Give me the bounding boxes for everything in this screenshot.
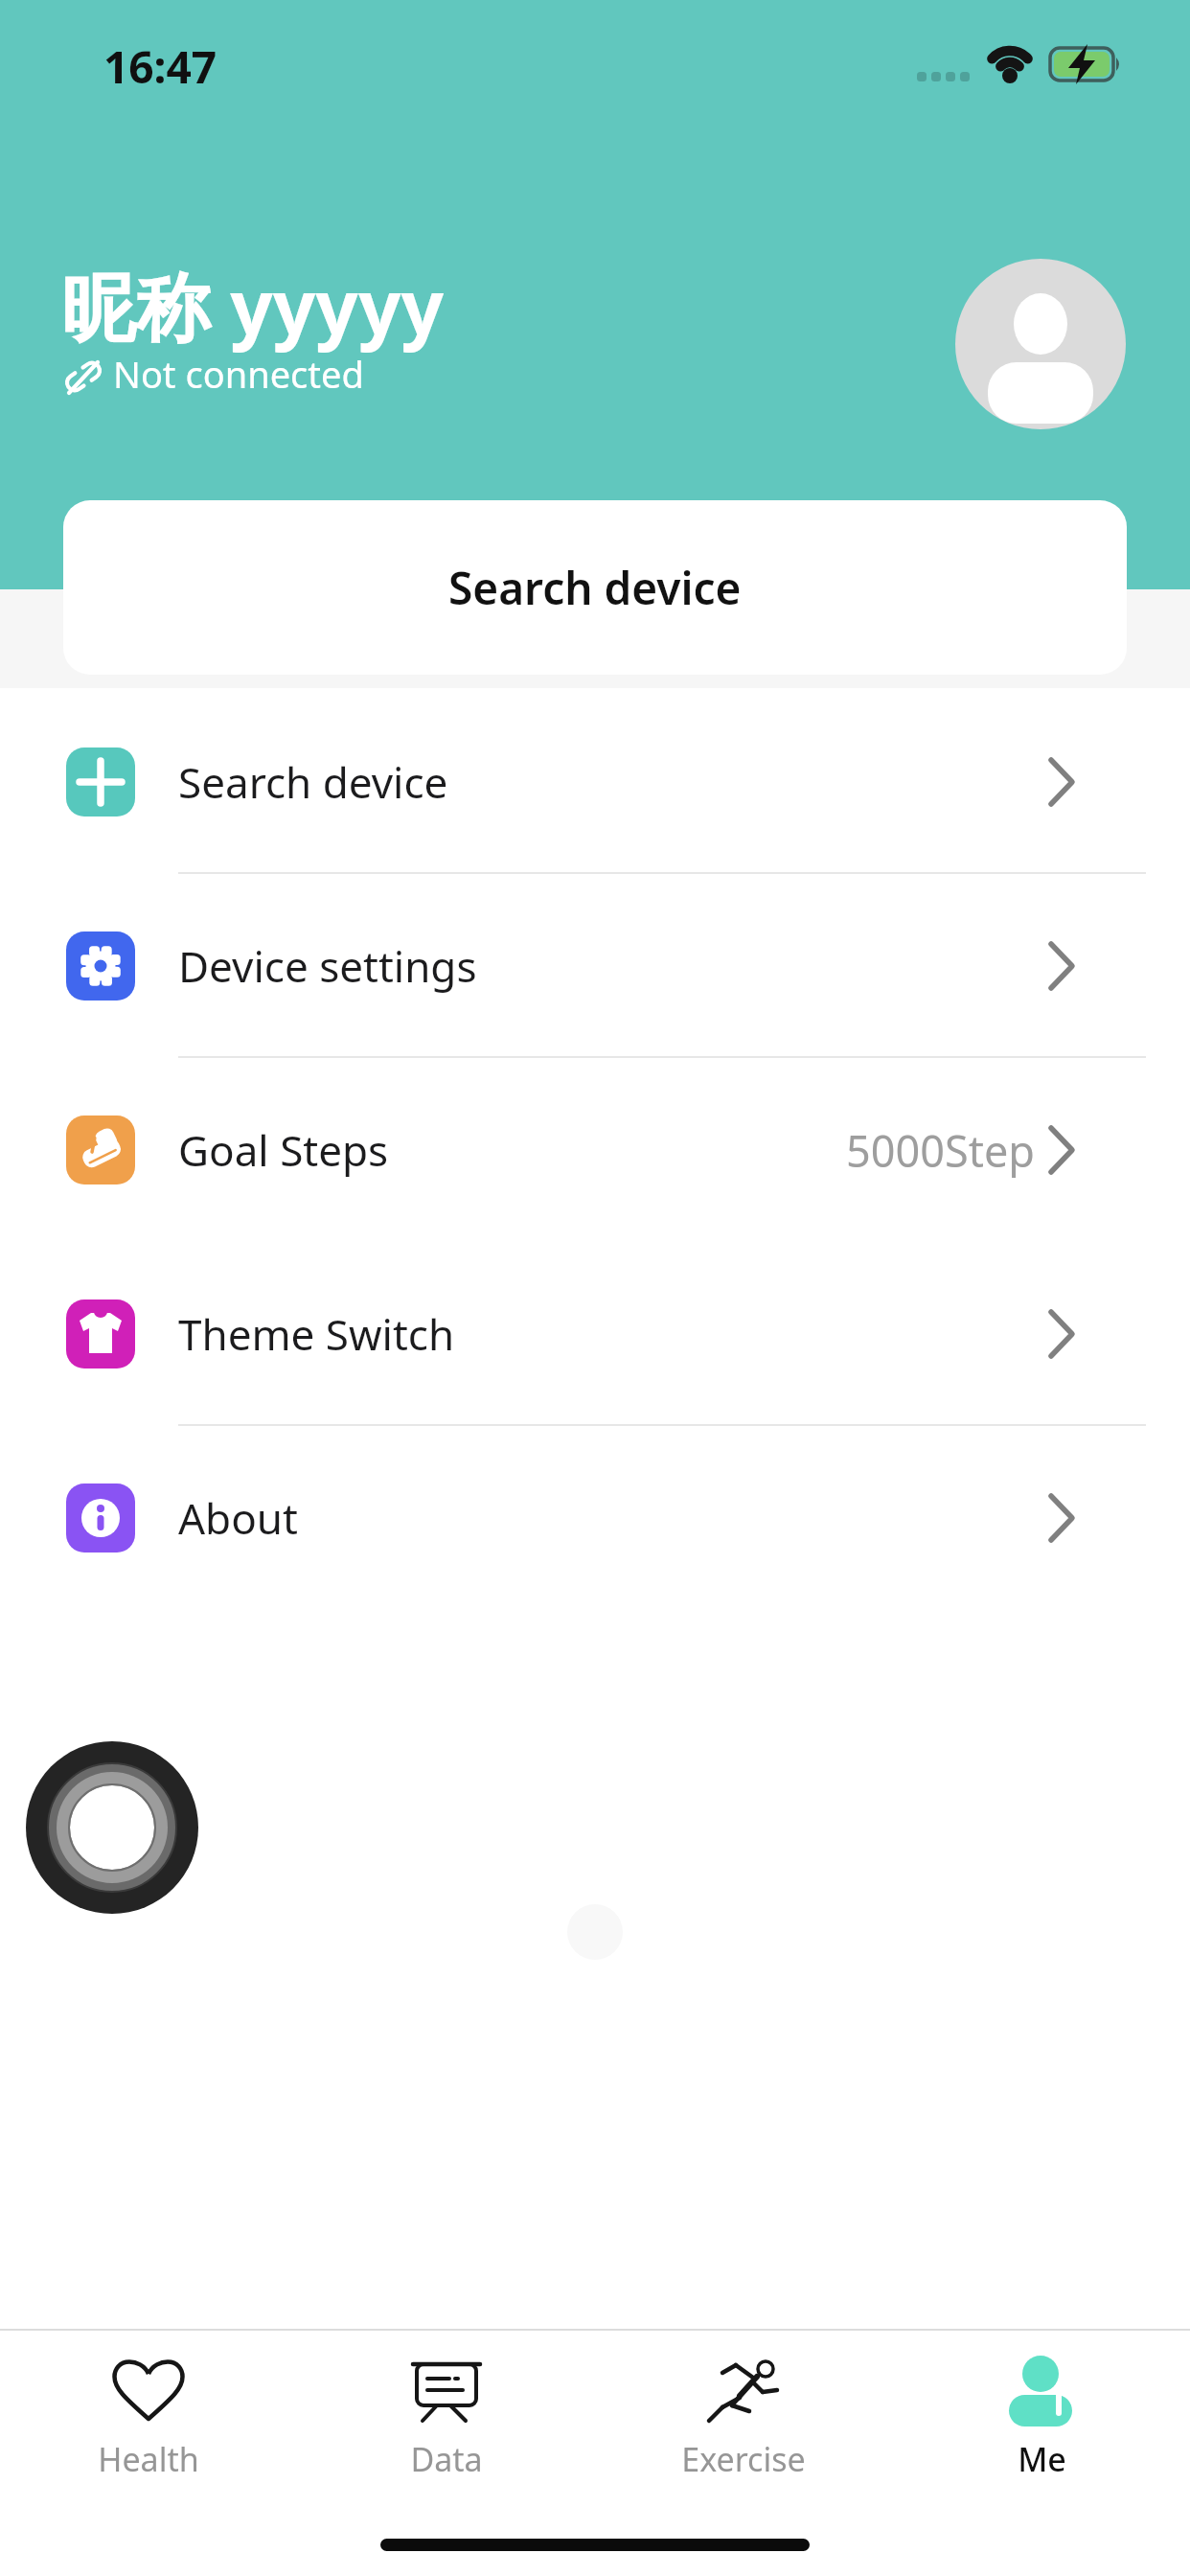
button[interactable] <box>26 1741 198 1914</box>
button[interactable]: Device settings <box>0 874 1190 1058</box>
staticText: Data <box>410 2437 483 2481</box>
button[interactable] <box>955 259 1126 429</box>
button[interactable]: Health <box>34 2353 263 2506</box>
button[interactable]: Data <box>332 2353 561 2506</box>
staticText: Exercise <box>681 2437 806 2481</box>
button[interactable]: Search device <box>0 690 1190 874</box>
staticText: Me <box>1018 2437 1066 2481</box>
staticText: Search device <box>448 558 742 618</box>
button[interactable]: About <box>0 1426 1190 1610</box>
staticText: Search device <box>178 753 448 811</box>
staticText: Device settings <box>178 937 477 995</box>
button[interactable]: Exercise <box>629 2353 858 2506</box>
staticText: About <box>178 1489 298 1547</box>
button[interactable]: Goal Steps <box>0 1058 1190 1242</box>
staticText: Health <box>98 2437 199 2481</box>
button[interactable]: Theme Switch <box>0 1242 1190 1426</box>
staticText: Theme Switch <box>178 1305 455 1363</box>
staticText: Goal Steps <box>178 1121 389 1179</box>
staticText: 5000Step <box>846 1121 1035 1180</box>
button[interactable]: Me <box>927 2353 1156 2506</box>
staticText: Not connected <box>113 349 364 399</box>
button[interactable]: Search device <box>63 500 1127 675</box>
staticText: 昵称 yyyyy <box>61 255 444 357</box>
staticText: 16:47 <box>103 36 217 97</box>
